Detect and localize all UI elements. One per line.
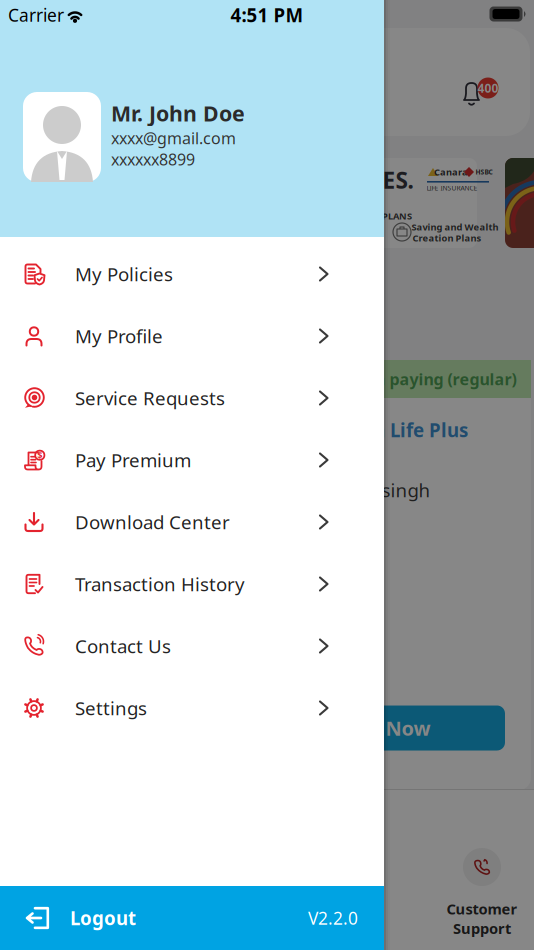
- button[interactable]: Notifications: [477, 77, 498, 98]
- staticText: HSBC: [475, 168, 492, 176]
- staticText: Support: [453, 918, 511, 938]
- button[interactable]: My Profile: [0, 305, 384, 367]
- staticText: Download Center: [75, 510, 230, 534]
- staticText: My Policies: [75, 262, 173, 286]
- staticText: Saving and Wealth: [411, 221, 498, 233]
- button[interactable]: Transaction History: [0, 553, 384, 615]
- button[interactable]: Logout: [0, 886, 384, 950]
- staticText: um paying (regular): [359, 368, 516, 390]
- staticText: Customer: [446, 899, 517, 918]
- staticText: ES.: [382, 165, 413, 195]
- staticText: Service Requests: [75, 386, 225, 410]
- staticText: Creation Plans: [412, 232, 481, 244]
- staticText: LIFE INSURANCE: [426, 184, 477, 192]
- button[interactable]: Settings: [0, 677, 384, 739]
- staticText: Settings: [75, 696, 147, 720]
- staticText: 400: [477, 80, 498, 96]
- staticText: xxxxxx8899: [111, 149, 195, 170]
- staticText: Transaction History: [75, 572, 245, 596]
- staticText: xxxx@gmail.com: [111, 127, 236, 148]
- staticText: Canara: [434, 166, 468, 178]
- staticText: Logout: [70, 906, 136, 930]
- button[interactable]: Customer Support: [446, 848, 517, 938]
- staticText: PLANS: [382, 210, 412, 222]
- staticText: Carrier: [8, 3, 64, 26]
- staticText: Pay Now: [345, 715, 430, 741]
- button[interactable]: Pay Now: [271, 705, 505, 750]
- staticText: an Life Plus: [362, 418, 468, 442]
- staticText: Contact Us: [75, 634, 171, 658]
- button[interactable]: Contact Us: [0, 615, 384, 677]
- staticText: Pay Premium: [75, 448, 191, 472]
- button[interactable]: Mr. John Doe: [0, 0, 384, 182]
- staticText: singh: [381, 478, 430, 502]
- staticText: My Profile: [75, 324, 163, 348]
- staticText: Mr. John Doe: [111, 99, 245, 127]
- button[interactable]: $: [0, 429, 384, 491]
- staticText: V2.2.0: [308, 906, 358, 929]
- staticText: $: [37, 449, 42, 461]
- button[interactable]: Download Center: [0, 491, 384, 553]
- button[interactable]: My Policies: [0, 243, 384, 305]
- staticText: 4:51 PM: [230, 3, 303, 27]
- button[interactable]: Service Requests: [0, 367, 384, 429]
